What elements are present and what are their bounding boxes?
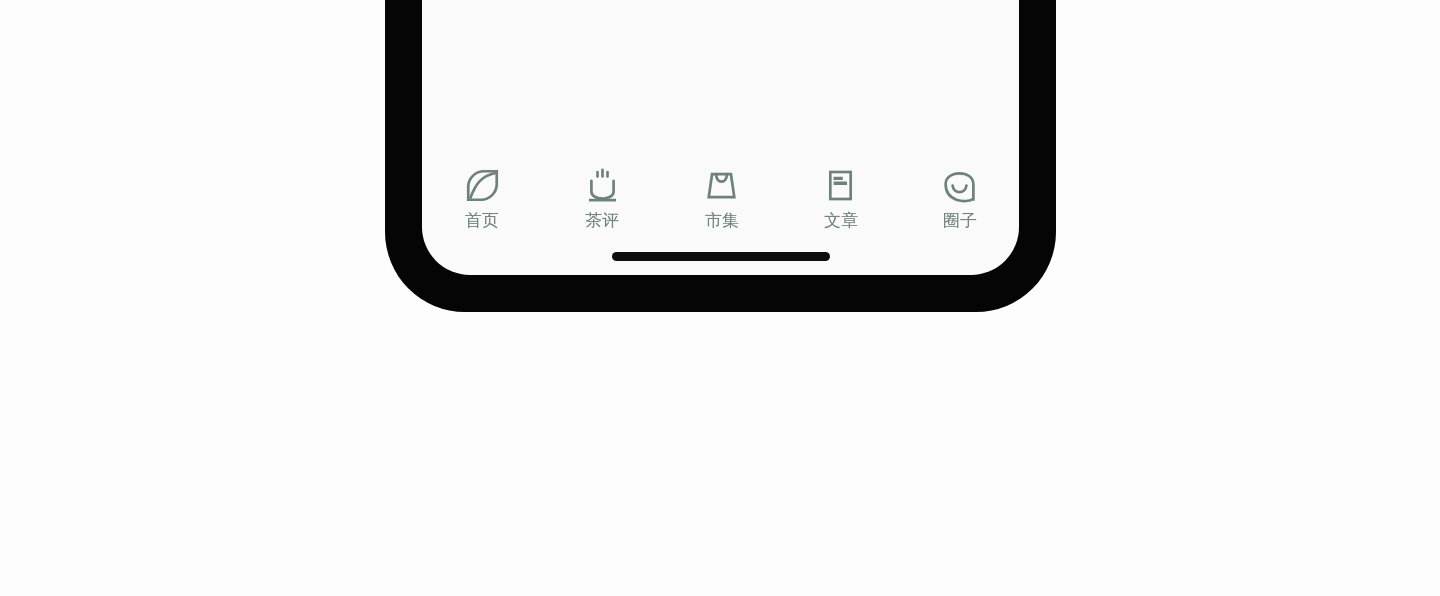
button[interactable]: Tea reviews — [542, 153, 662, 245]
button[interactable]: Market — [662, 153, 781, 245]
staticText: 圈子 — [943, 210, 977, 231]
button[interactable]: Articles — [781, 153, 900, 245]
staticText: 文章 — [824, 210, 858, 231]
button[interactable]: Home — [422, 153, 542, 245]
staticText: 市集 — [705, 210, 739, 231]
staticText: 茶评 — [585, 210, 619, 231]
button[interactable]: Community — [900, 153, 1019, 245]
staticText: 首页 — [465, 210, 499, 231]
